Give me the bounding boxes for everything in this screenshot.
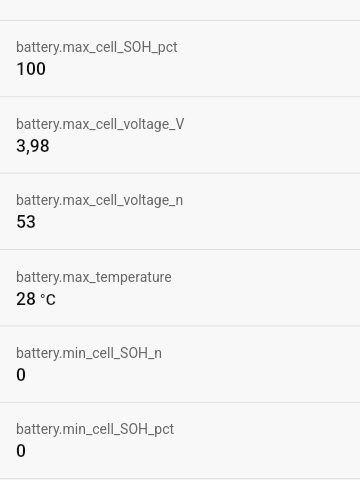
- staticText: 3,98: [16, 136, 50, 157]
- staticText: battery.max_cell_SOH_pct: [16, 39, 178, 55]
- staticText: battery.max_cell_voltage_V: [16, 116, 185, 132]
- staticText: battery.min_cell_SOH_n: [16, 345, 163, 361]
- staticText: 28 °C: [16, 289, 56, 310]
- button[interactable]: battery.max_cell_SOH_pct: [0, 20, 360, 96]
- button[interactable]: battery.max_cell_voltage_n: [0, 173, 360, 249]
- staticText: 53: [16, 212, 36, 233]
- button[interactable]: battery.max_temperature: [0, 250, 360, 326]
- button[interactable]: battery.min_cell_SOH_pct: [0, 402, 360, 478]
- staticText: battery.max_temperature: [16, 269, 172, 285]
- staticText: battery.max_cell_voltage_n: [16, 192, 184, 208]
- button[interactable]: battery.max_cell_voltage_V: [0, 97, 360, 173]
- staticText: 0: [16, 441, 26, 462]
- button[interactable]: battery.min_cell_SOH_n: [0, 326, 360, 402]
- staticText: 0: [16, 365, 26, 386]
- staticText: 100: [16, 59, 46, 80]
- staticText: battery.min_cell_SOH_pct: [16, 421, 175, 437]
